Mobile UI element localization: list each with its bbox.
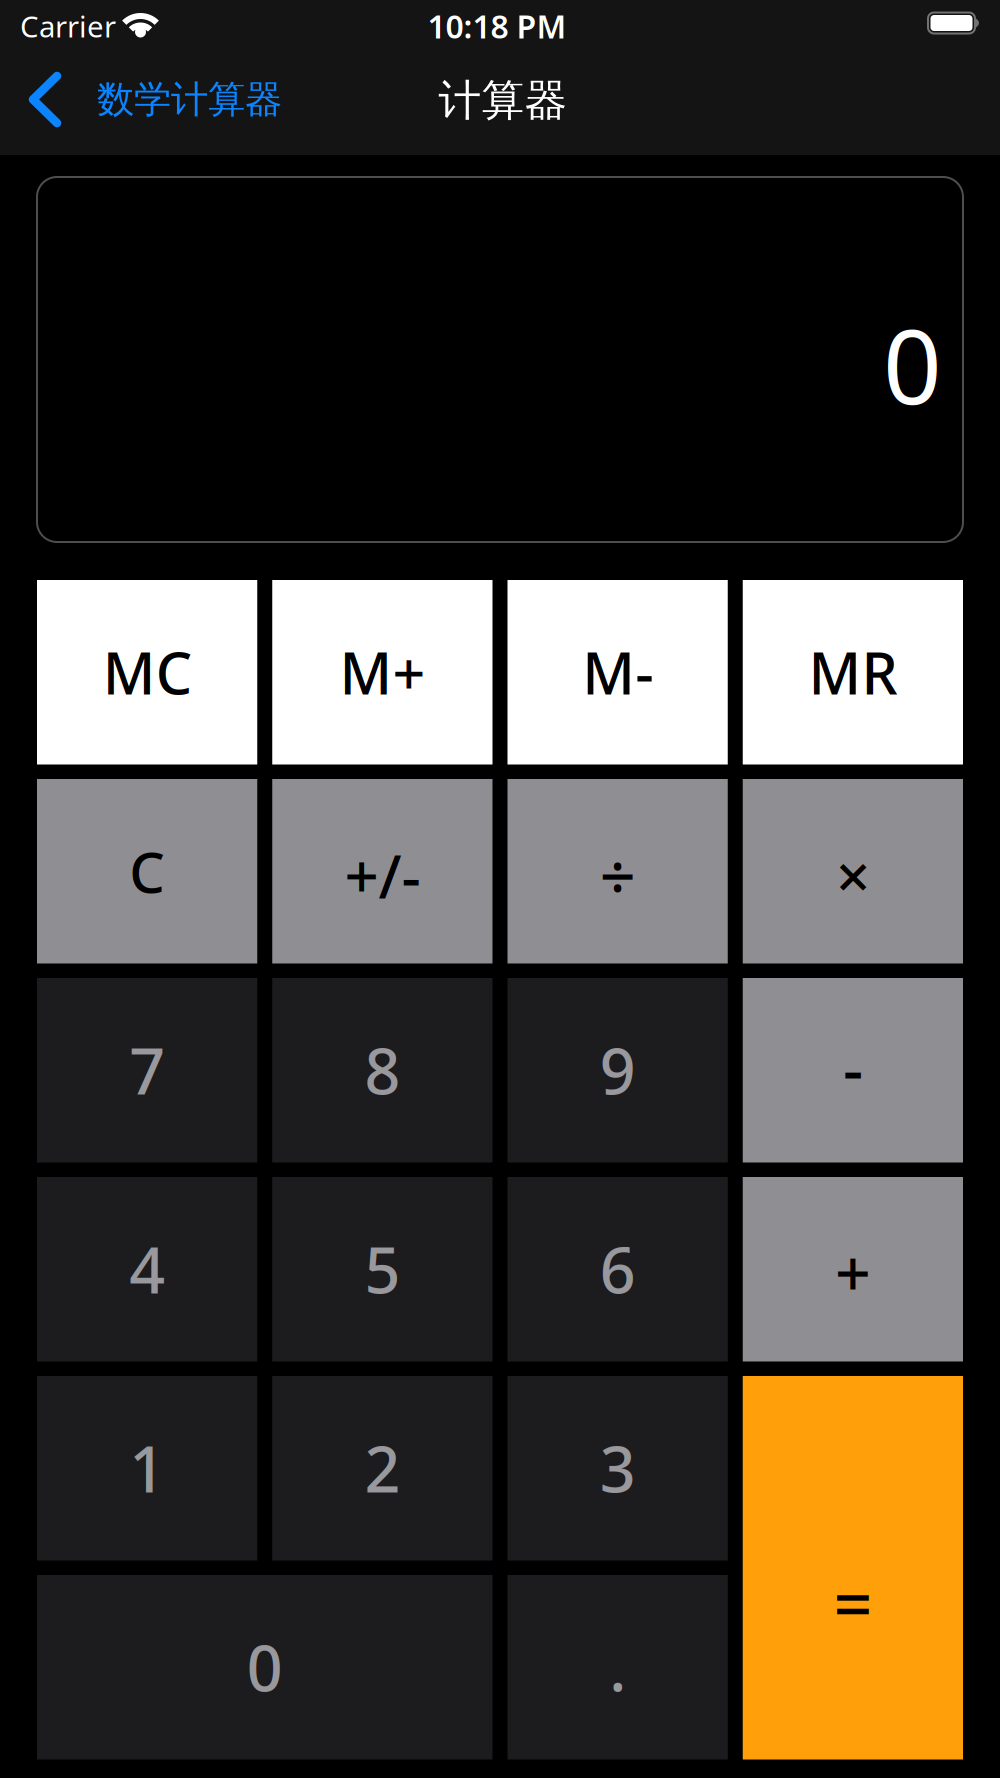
staticText: =: [833, 1557, 872, 1647]
staticText: 0: [883, 296, 942, 433]
staticText: Carrier: [20, 6, 116, 45]
staticText: 8: [364, 1029, 400, 1112]
staticText: 5: [364, 1228, 400, 1311]
staticText: MC: [103, 634, 192, 710]
staticText: 0: [247, 1626, 283, 1709]
staticText: M+: [339, 634, 425, 710]
staticText: 2: [364, 1427, 400, 1510]
staticText: C: [129, 834, 165, 908]
staticText: 计算器: [438, 74, 567, 127]
staticText: 1: [129, 1427, 165, 1510]
staticText: 3: [600, 1427, 636, 1510]
staticText: M-: [582, 634, 653, 710]
staticText: 10:18 PM: [427, 5, 566, 47]
staticText: MR: [808, 634, 897, 710]
staticText: -: [843, 1027, 863, 1110]
staticText: ÷: [600, 834, 636, 917]
staticText: .: [609, 1626, 626, 1709]
staticText: ×: [836, 835, 870, 915]
staticText: 9: [600, 1029, 636, 1112]
staticText: +: [835, 1231, 871, 1314]
staticText: +/-: [344, 835, 420, 915]
staticText: 4: [129, 1228, 165, 1311]
staticText: 6: [600, 1228, 636, 1311]
staticText: 数学计算器: [97, 77, 282, 122]
staticText: 7: [129, 1029, 165, 1112]
